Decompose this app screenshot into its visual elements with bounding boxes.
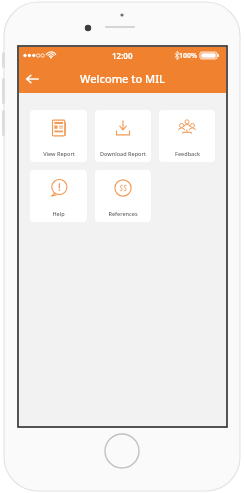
button[interactable]: Feedback [159,110,215,162]
button[interactable]: Help [30,170,87,222]
staticText: Welcome to MIL [80,71,165,86]
staticText: References [108,210,138,217]
staticText: Help [52,210,65,217]
staticText: 100% [179,51,198,61]
staticText: 12:00 [112,50,133,61]
button[interactable]: Back [19,66,45,92]
button[interactable]: Download Report [95,110,151,162]
staticText: Download Report [100,150,146,157]
staticText: Feedback [175,150,200,157]
staticText: View Report [43,150,75,157]
button[interactable]: References [95,170,151,222]
button[interactable]: View Report [30,110,87,162]
